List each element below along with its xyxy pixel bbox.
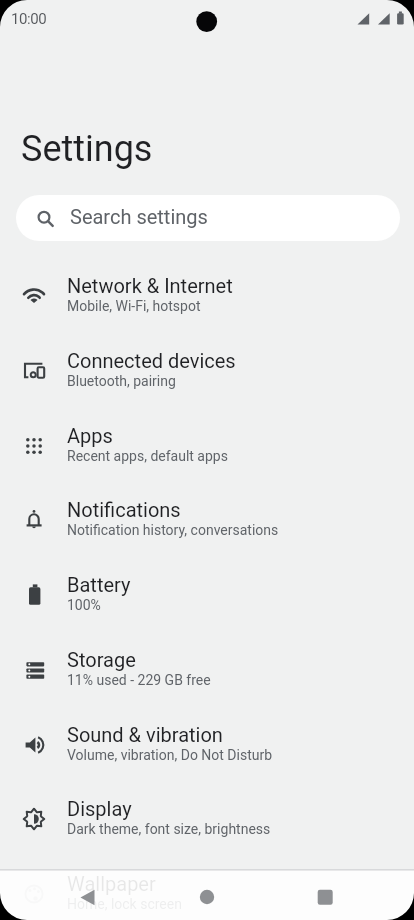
button[interactable]: Connected devices bbox=[0, 333, 414, 408]
staticText: Wallpaper bbox=[67, 872, 156, 895]
button[interactable]: Network & Internet bbox=[0, 258, 414, 333]
staticText: Recent apps, default apps bbox=[67, 448, 228, 464]
button[interactable]: Notifications bbox=[0, 482, 414, 557]
button[interactable]: Wallpaper bbox=[0, 856, 414, 920]
button[interactable]: Battery bbox=[0, 557, 414, 632]
button[interactable]: Storage bbox=[0, 632, 414, 707]
staticText: Battery bbox=[67, 573, 131, 596]
staticText: Sound & vibration bbox=[67, 723, 223, 746]
staticText: Volume, vibration, Do Not Disturb bbox=[67, 747, 273, 763]
staticText: Display bbox=[67, 797, 132, 820]
staticText: Mobile, Wi-Fi, hotspot bbox=[67, 298, 201, 314]
button[interactable]: Display bbox=[0, 781, 414, 856]
button[interactable] bbox=[138, 870, 276, 920]
button[interactable] bbox=[0, 870, 138, 920]
button[interactable]: Search settings bbox=[16, 195, 400, 241]
staticText: Connected devices bbox=[67, 349, 236, 372]
button[interactable]: Apps bbox=[0, 408, 414, 483]
button[interactable]: Sound & vibration bbox=[0, 707, 414, 782]
button[interactable] bbox=[276, 870, 414, 920]
staticText: Storage bbox=[67, 648, 136, 671]
staticText: 100% bbox=[67, 597, 101, 613]
staticText: Dark theme, font size, brightness bbox=[67, 821, 271, 837]
staticText: Network & Internet bbox=[67, 274, 233, 297]
staticText: 11% used - 229 GB free bbox=[67, 672, 211, 688]
staticText: Settings bbox=[21, 128, 153, 170]
staticText: Search settings bbox=[70, 205, 208, 228]
staticText: Apps bbox=[67, 424, 113, 447]
staticText: Home, lock screen bbox=[67, 896, 182, 912]
staticText: Notification history, conversations bbox=[67, 522, 279, 538]
staticText: Notifications bbox=[67, 498, 181, 521]
staticText: 10:00 bbox=[11, 10, 47, 28]
staticText: Bluetooth, pairing bbox=[67, 373, 176, 389]
